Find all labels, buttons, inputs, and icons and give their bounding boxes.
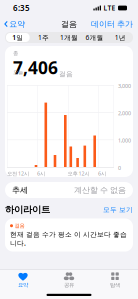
- staticText: 6시: [98, 170, 106, 177]
- staticText: 공유: [64, 282, 74, 288]
- staticText: 7,406: [13, 56, 58, 79]
- staticText: 하이라이트: [5, 204, 50, 215]
- staticText: 1개월: [60, 33, 78, 42]
- staticText: 걸음: [61, 19, 77, 29]
- staticText: 6:35: [13, 3, 30, 13]
- staticText: 0: [118, 164, 121, 171]
- staticText: 1년: [115, 33, 126, 42]
- staticText: 걸음: [59, 70, 73, 78]
- button[interactable]: 모두 보기: [103, 206, 133, 214]
- staticText: 데이터 추가: [91, 19, 133, 29]
- staticText: 6시: [37, 170, 45, 177]
- staticText: 총: [13, 50, 18, 57]
- staticText: 탐색: [110, 282, 120, 288]
- staticText: 2,000: [118, 110, 131, 117]
- staticText: 요약: [18, 282, 28, 288]
- staticText: 3,000: [118, 82, 131, 89]
- staticText: 1주: [38, 33, 49, 42]
- button[interactable]: 6개월: [82, 32, 107, 43]
- button[interactable]: 1년: [107, 32, 133, 43]
- staticText: 요약: [9, 19, 25, 29]
- staticText: 오늘: [13, 69, 23, 76]
- staticText: 6개월: [86, 33, 104, 42]
- button[interactable]: 요약: [0, 16, 29, 31]
- staticText: 걸음: [14, 222, 24, 229]
- button[interactable]: 1일: [5, 32, 31, 43]
- staticText: 1일: [12, 33, 23, 42]
- staticText: LTE: [103, 4, 115, 12]
- staticText: 현재 걸음 수가 평소 이 시간보다 좋습니다.: [10, 230, 127, 247]
- staticText: 모두 보기: [103, 206, 133, 214]
- button[interactable]: 걸음: [5, 215, 133, 252]
- button[interactable]: 1개월: [56, 32, 82, 43]
- button[interactable]: 추세: [5, 182, 133, 198]
- staticText: 추세: [12, 185, 28, 195]
- button[interactable]: 1주: [31, 32, 56, 43]
- button[interactable]: 탐색: [92, 270, 138, 290]
- staticText: 오후 12시: [67, 170, 89, 177]
- staticText: 오전 12시: [7, 170, 29, 177]
- button[interactable]: 요약: [0, 270, 46, 290]
- button[interactable]: 데이터 추가: [86, 16, 138, 31]
- staticText: 1,000: [118, 137, 131, 144]
- staticText: 계산할 수 없음: [74, 185, 126, 195]
- button[interactable]: 공유: [46, 270, 92, 290]
